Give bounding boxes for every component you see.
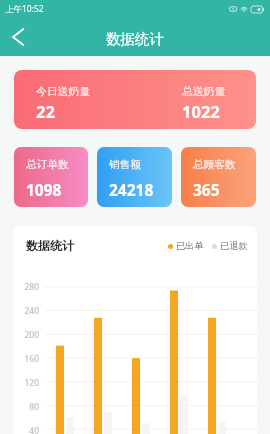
staticText: 22: [36, 100, 55, 122]
staticText: 上午10:52: [5, 3, 44, 15]
staticText: 200: [24, 329, 39, 341]
staticText: 销售额: [109, 158, 141, 171]
button[interactable]: 总订单数: [14, 147, 88, 207]
staticText: 1098: [26, 179, 62, 200]
staticText: 已退款: [220, 240, 248, 252]
staticText: 数据统计: [106, 30, 164, 48]
button[interactable]: Back: [1, 19, 37, 55]
staticText: 数据统计: [26, 238, 74, 253]
staticText: 280: [24, 281, 39, 293]
staticText: 240: [24, 305, 39, 317]
staticText: 1022: [182, 100, 220, 122]
staticText: 24218: [109, 179, 154, 200]
button[interactable]: 今日送奶量: [14, 70, 256, 129]
button[interactable]: 已出单: [168, 240, 204, 252]
staticText: 总顾客数: [193, 158, 236, 171]
staticText: 总订单数: [26, 158, 69, 171]
button[interactable]: 总顾客数: [181, 147, 256, 207]
staticText: 今日送奶量: [36, 85, 90, 99]
button[interactable]: 销售额: [97, 147, 172, 207]
staticText: 已出单: [176, 240, 204, 252]
staticText: 40: [29, 425, 39, 434]
staticText: 120: [24, 377, 39, 389]
staticText: 160: [24, 353, 39, 365]
staticText: 80: [29, 401, 39, 413]
staticText: 总送奶量: [182, 85, 226, 99]
staticText: 365: [193, 179, 220, 200]
button[interactable]: 已退款: [212, 240, 248, 252]
